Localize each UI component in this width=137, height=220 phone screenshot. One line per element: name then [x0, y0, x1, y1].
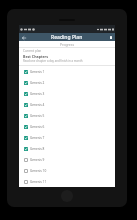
staticText: Genesis 9: [30, 158, 45, 162]
button[interactable]: Genesis 11: [19, 176, 115, 187]
button[interactable]: Genesis 8: [19, 143, 115, 154]
button[interactable]: Genesis 7: [19, 132, 115, 143]
button[interactable]: Genesis 5: [19, 110, 115, 121]
staticText: Read one chapter a day and finish in a m…: [23, 59, 83, 63]
staticText: Genesis 2: [30, 81, 45, 85]
staticText: Genesis 10: [30, 169, 47, 173]
staticText: Genesis 5: [30, 114, 45, 118]
button[interactable]: Genesis 3: [19, 88, 115, 99]
button[interactable]: Genesis 1: [19, 66, 115, 77]
button[interactable]: Genesis 2: [19, 77, 115, 88]
staticText: Genesis 1: [30, 70, 45, 74]
button[interactable]: Genesis 6: [19, 121, 115, 132]
staticText: Genesis 6: [30, 125, 45, 129]
staticText: Genesis 8: [30, 147, 45, 151]
staticText: Reading Plan: [51, 34, 83, 41]
button[interactable]: More options: [106, 33, 115, 42]
staticText: Current plan: [23, 49, 42, 53]
button[interactable]: Back: [19, 33, 28, 42]
button[interactable]: Genesis 10: [19, 165, 115, 176]
staticText: Genesis 4: [30, 103, 45, 107]
button[interactable]: Progress: [19, 41, 115, 47]
staticText: Genesis 3: [30, 92, 45, 96]
staticText: Progress: [60, 42, 75, 47]
staticText: Best Chapters: [23, 54, 49, 59]
staticText: Genesis 11: [30, 180, 47, 184]
button[interactable]: Genesis 4: [19, 99, 115, 110]
staticText: Genesis 7: [30, 136, 45, 140]
button[interactable]: Genesis 9: [19, 154, 115, 165]
